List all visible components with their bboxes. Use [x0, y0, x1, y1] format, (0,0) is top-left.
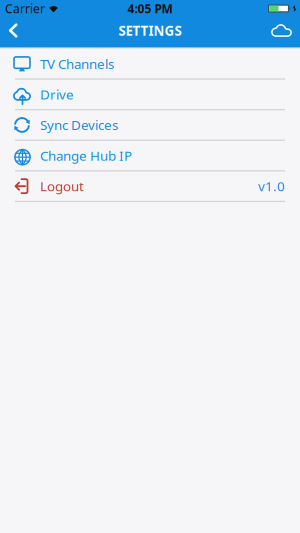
staticText: TV Channels: [40, 55, 114, 73]
button[interactable]: TV Channels: [0, 49, 300, 78]
button[interactable]: Sync Devices: [0, 110, 300, 140]
button[interactable]: Change Hub IP: [0, 141, 300, 170]
staticText: 4:05 PM: [127, 0, 172, 16]
button[interactable]: Cloud: [263, 24, 300, 37]
button[interactable]: Drive: [0, 80, 300, 109]
staticText: SETTINGS: [118, 22, 181, 39]
staticText: v1.0: [258, 177, 285, 195]
staticText: Change Hub IP: [40, 147, 132, 164]
staticText: Sync Devices: [40, 116, 118, 134]
staticText: Drive: [40, 85, 74, 103]
staticText: Carrier: [5, 0, 45, 16]
button[interactable]: Back: [0, 23, 28, 37]
staticText: Logout: [40, 177, 84, 195]
button[interactable]: Logout: [0, 171, 300, 201]
